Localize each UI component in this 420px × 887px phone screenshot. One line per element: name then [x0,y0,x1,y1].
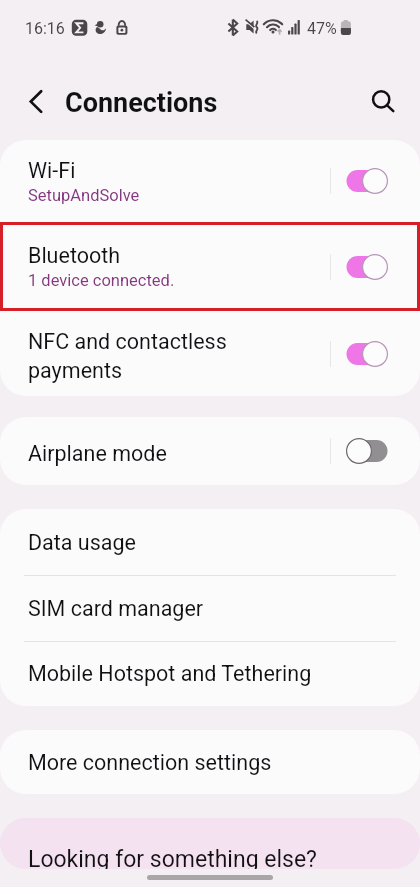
staticText: Connections [65,87,218,119]
staticText: Looking for something else? [28,846,317,869]
staticText: Data usage [28,530,136,555]
staticText: 47% [307,19,337,38]
staticText: More connection settings [28,750,272,775]
button[interactable]: Back [17,81,55,119]
button[interactable]: Turn off [346,340,388,368]
button[interactable]: Search [362,81,400,119]
staticText: Bluetooth [28,243,121,268]
staticText: SIM card manager [28,596,204,621]
button[interactable]: More connection settings [0,730,420,794]
staticText: Airplane mode [28,441,167,466]
button[interactable]: SIM card manager [0,575,420,641]
button[interactable]: NFC and contactless payments [0,311,420,396]
button[interactable]: Turn off [346,167,388,195]
button[interactable]: Wi-Fi [0,140,420,222]
staticText: 16:16 [25,19,65,38]
staticText: NFC and contactless payments [28,329,227,383]
button[interactable]: Airplane mode [0,417,420,485]
button[interactable]: Turn on [346,437,388,465]
staticText: 1 device connected. [28,271,175,290]
staticText: SetupAndSolve [28,186,140,205]
button[interactable]: Data usage [0,509,420,575]
button[interactable]: Bluetooth [0,222,420,311]
button[interactable]: Turn off [346,253,388,281]
staticText: Wi-Fi [28,158,76,183]
staticText: Mobile Hotspot and Tethering [28,661,312,686]
button[interactable]: Looking for something else? [0,818,420,869]
button[interactable]: Mobile Hotspot and Tethering [0,641,420,706]
